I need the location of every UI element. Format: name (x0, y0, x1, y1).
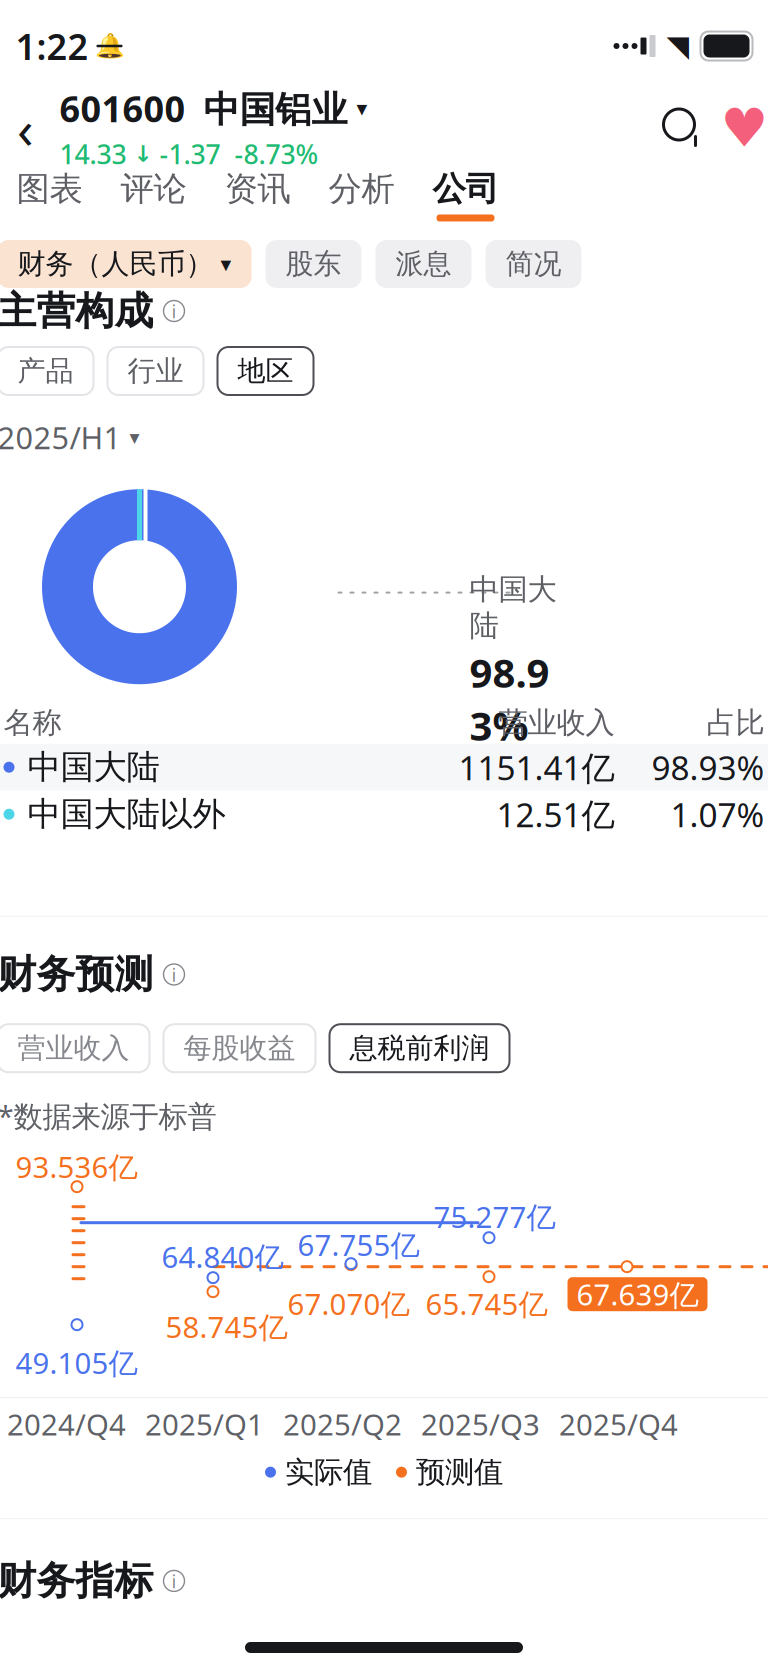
staticText: 每股收益 (183, 1031, 295, 1065)
staticText: 简况 (505, 247, 561, 281)
staticText: 64.840亿 (161, 1237, 283, 1276)
staticText: 2025/Q1 (145, 1405, 264, 1444)
staticText: 财务指标 (0, 1557, 153, 1605)
staticText: 75.277亿 (433, 1197, 555, 1236)
staticText: 67.639亿 (576, 1275, 698, 1314)
staticText: 49.105亿 (15, 1343, 137, 1382)
staticText: 名称 (3, 705, 61, 741)
button[interactable]: 分析 (309, 168, 413, 221)
button[interactable]: Search (656, 102, 708, 154)
staticText: 2025/Q3 (421, 1405, 540, 1444)
staticText: 评论 (120, 168, 186, 209)
staticText: ♥ (720, 98, 768, 158)
staticText: 12.51亿 (496, 792, 614, 836)
staticText: ▾ (129, 426, 139, 449)
staticText: 财务（人民币） (17, 247, 213, 281)
staticText: 中国大陆以外 (27, 794, 225, 835)
staticText: 93.536亿 (15, 1147, 137, 1186)
staticText: 1151.41亿 (458, 745, 614, 789)
button[interactable]: 股东 (265, 240, 361, 288)
staticText: 资讯 (224, 168, 290, 209)
button[interactable]: 资讯 (205, 168, 309, 221)
staticText: 601600 中国铝业 (59, 84, 347, 132)
button[interactable]: 派息 (375, 240, 471, 288)
button[interactable]: 息税前利润 (329, 1024, 509, 1072)
staticText: 14.33 (59, 136, 126, 172)
button[interactable]: 每股收益 (163, 1024, 315, 1072)
staticText: i (171, 1568, 176, 1593)
staticText: ◥ (666, 29, 689, 63)
staticText: 2025/Q4 (559, 1405, 678, 1444)
staticText: 67.755亿 (297, 1225, 419, 1264)
staticText: ▾ (220, 252, 231, 276)
button[interactable]: 图表 (0, 168, 101, 221)
button[interactable]: 简况 (485, 240, 581, 288)
staticText: i (171, 299, 176, 323)
staticText: 占比 (706, 705, 764, 741)
staticText: 1:22 (15, 22, 88, 70)
staticText: 图表 (16, 168, 82, 209)
staticText: 1.07% (670, 792, 764, 836)
staticText: 67.070亿 (287, 1284, 409, 1323)
button[interactable]: Back (0, 100, 53, 156)
staticText: 派息 (395, 247, 451, 281)
button[interactable]: 评论 (101, 168, 205, 221)
button[interactable]: 财务（人民币） (0, 240, 251, 288)
staticText: 主营构成 (0, 287, 153, 335)
button[interactable]: 地区 (217, 347, 313, 395)
staticText: ‹ (17, 93, 34, 163)
staticText: 实际值 (285, 1454, 372, 1490)
staticText: 2024/Q4 (7, 1405, 126, 1444)
staticText: 财务预测 (0, 951, 153, 998)
staticText: 中国大陆 (469, 572, 556, 644)
staticText: 2025/H1 (0, 417, 121, 458)
staticText: 分析 (328, 168, 394, 209)
button[interactable]: 公司 (413, 168, 517, 221)
staticText: 65.745亿 (425, 1284, 547, 1323)
staticText: 地区 (237, 354, 293, 388)
button[interactable]: 行业 (107, 347, 203, 395)
staticText: 🔔 (94, 32, 124, 60)
staticText: 中国大陆 (27, 747, 159, 788)
staticText: ↓ (133, 141, 152, 167)
staticText: 公司 (432, 168, 498, 209)
staticText: 行业 (127, 354, 183, 388)
staticText: *数据来源于标普 (0, 1096, 216, 1135)
staticText: 息税前利润 (349, 1031, 489, 1065)
button[interactable]: Favorite (718, 102, 768, 154)
button[interactable]: 产品 (0, 347, 93, 395)
staticText: -1.37 -8.73% (159, 136, 318, 172)
staticText: 98.93% (469, 646, 549, 752)
staticText: 2025/Q2 (283, 1405, 402, 1444)
staticText: 58.745亿 (165, 1307, 287, 1346)
staticText: ▾ (356, 96, 367, 120)
staticText: 营业收入 (17, 1031, 129, 1065)
staticText: 营业收入 (498, 705, 614, 741)
staticText: 股东 (285, 247, 341, 281)
button[interactable]: 2025/H1 (0, 395, 139, 458)
staticText: 98.93% (651, 745, 764, 789)
button[interactable]: 营业收入 (0, 1024, 149, 1072)
staticText: i (171, 962, 176, 987)
staticText: 产品 (17, 354, 73, 388)
staticText: 预测值 (416, 1454, 503, 1490)
